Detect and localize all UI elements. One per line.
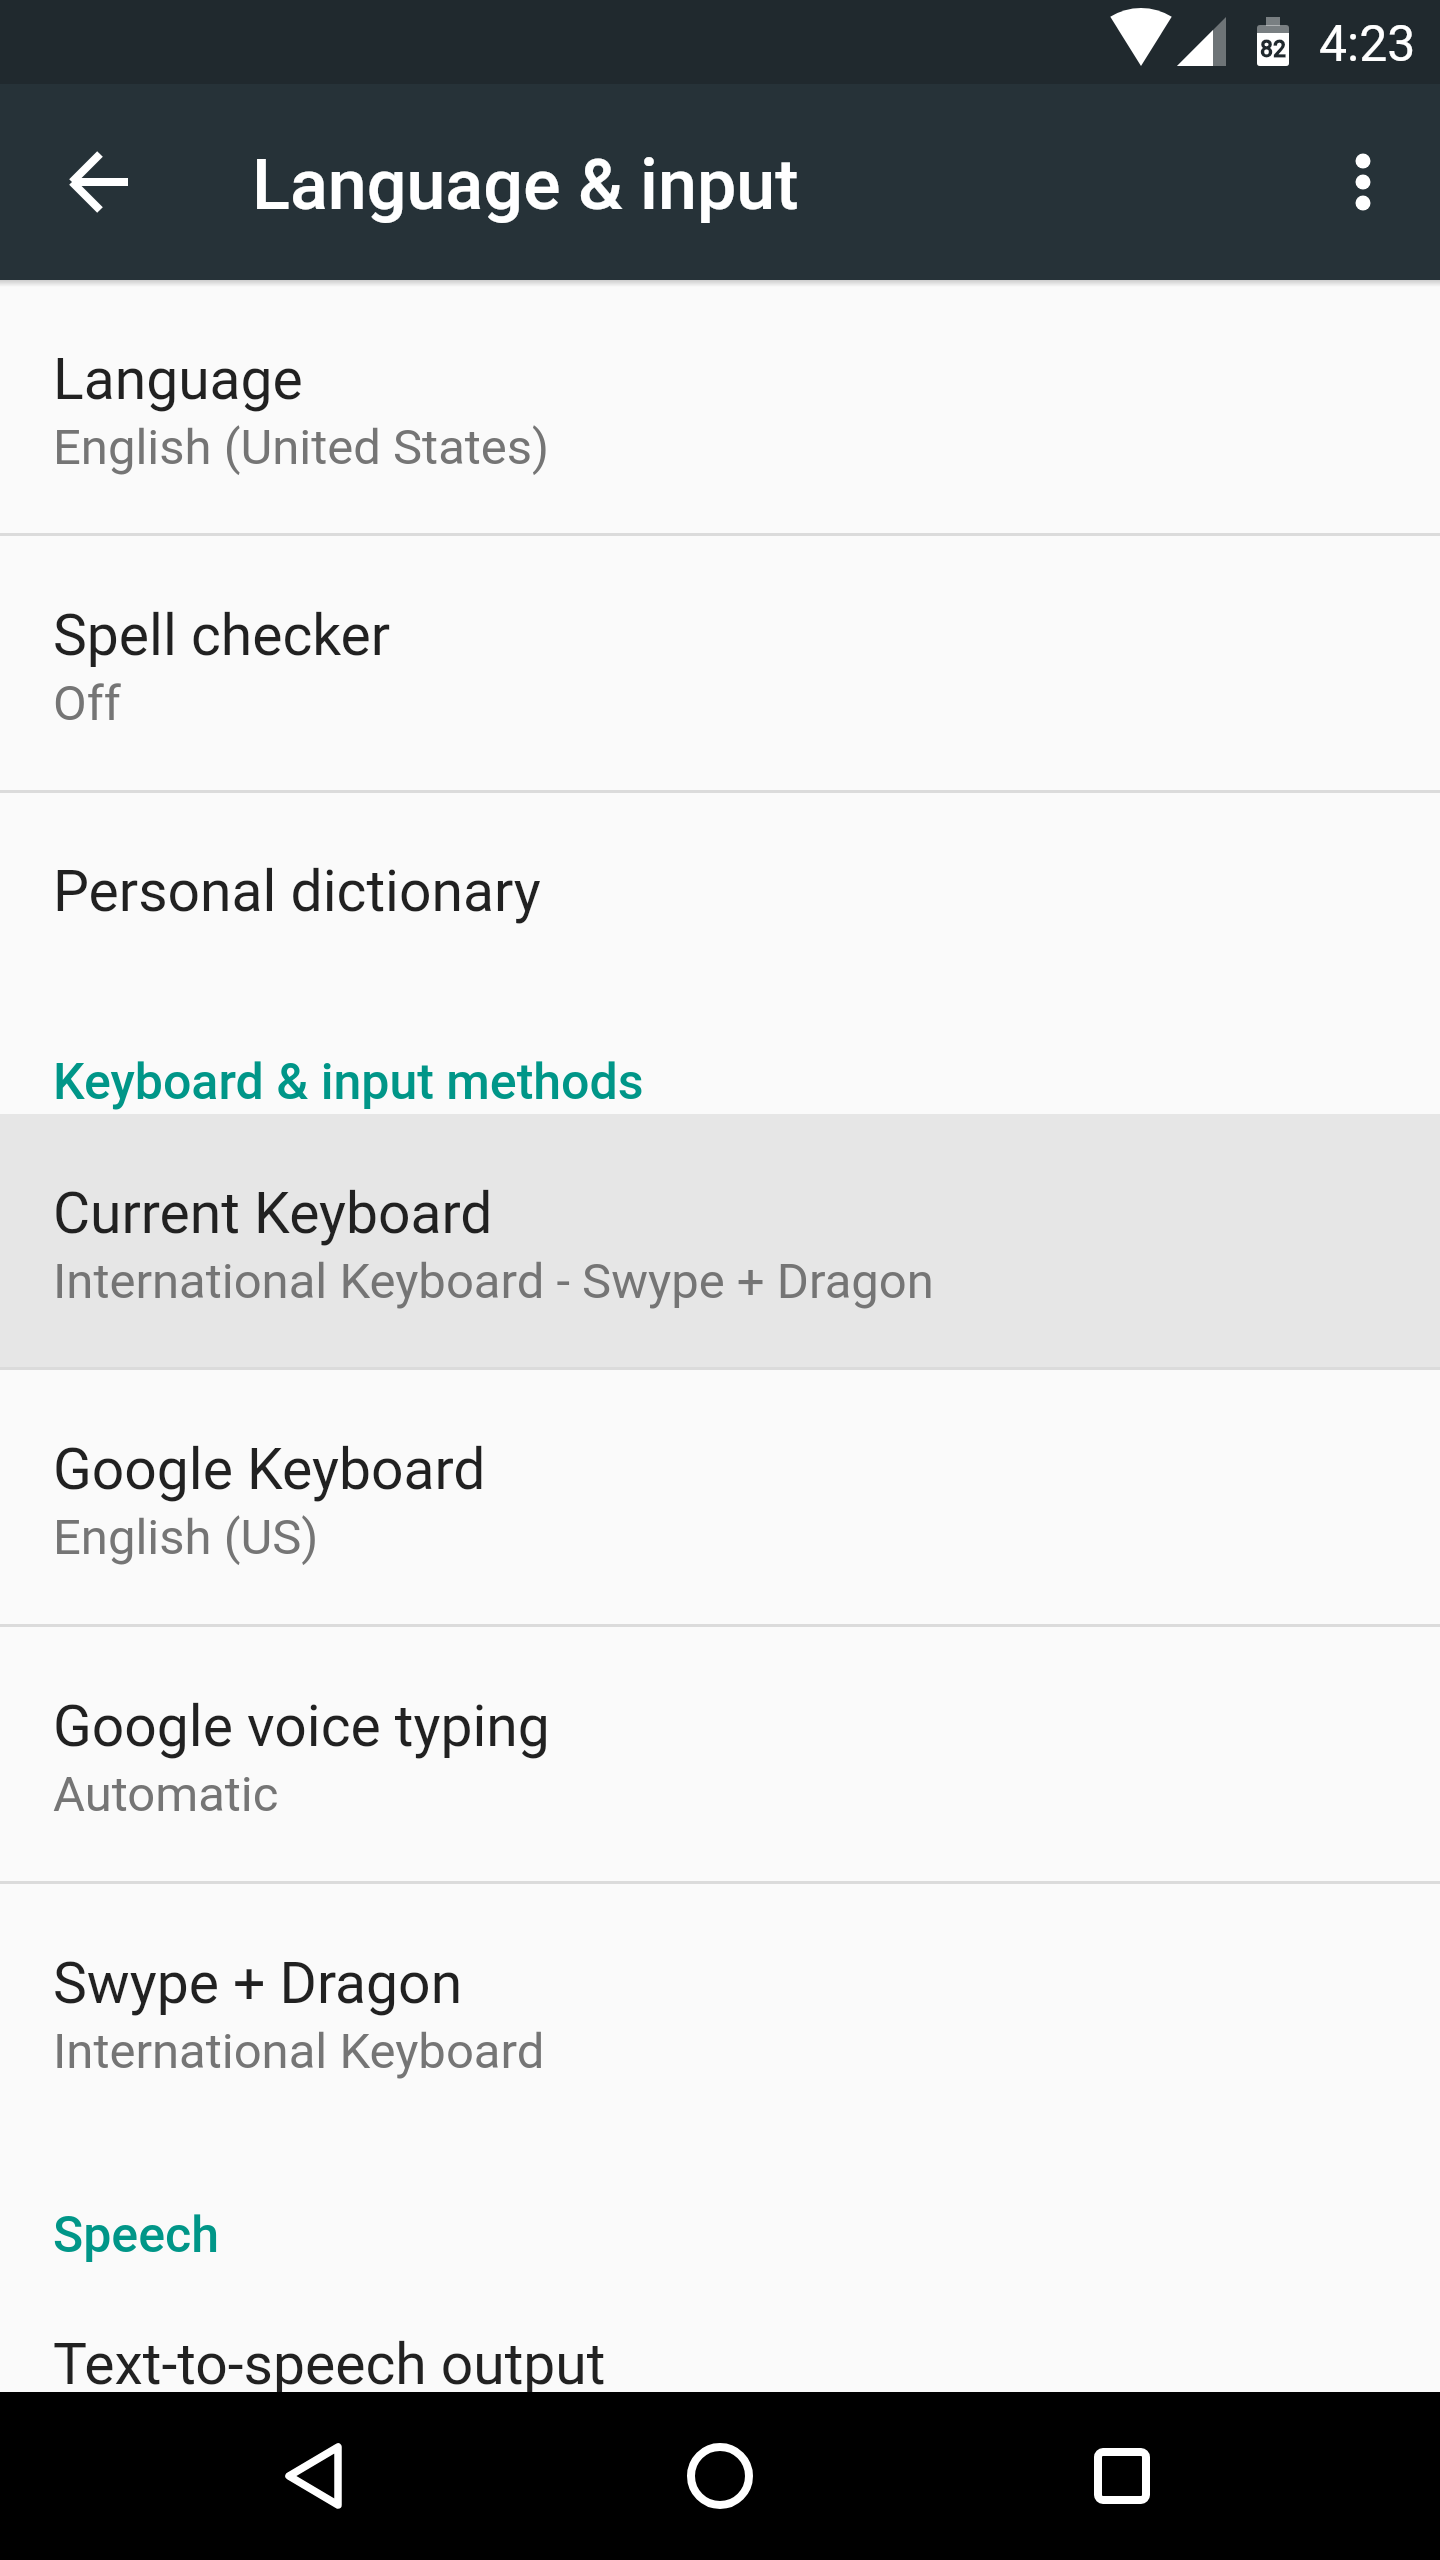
staticText: English (US) [53, 1509, 319, 1566]
button[interactable] [646, 2402, 794, 2550]
staticText: Keyboard & input methods [53, 1053, 644, 1112]
staticText: English (United States) [53, 419, 550, 476]
staticText: Spell checker [53, 602, 391, 669]
staticText: Automatic [53, 1766, 279, 1823]
staticText: Off [53, 675, 121, 732]
staticText: Language [53, 346, 303, 413]
button[interactable] [1307, 126, 1419, 238]
button[interactable]: Personal dictionary [0, 793, 1440, 989]
staticText: Swype + Dragon [53, 1950, 463, 2017]
staticText: Google Keyboard [53, 1436, 486, 1503]
button[interactable] [240, 2402, 388, 2550]
staticText: 82 [1260, 36, 1287, 63]
button[interactable]: Spell checker [0, 536, 1440, 790]
staticText: International Keyboard [53, 2023, 545, 2080]
button[interactable]: Text-to-speech output [0, 2267, 1440, 2392]
staticText: Google voice typing [53, 1693, 550, 1760]
button[interactable] [1048, 2402, 1196, 2550]
button[interactable]: Language [0, 280, 1440, 533]
staticText: Language & input [252, 144, 799, 226]
button[interactable]: Current Keyboard [0, 1114, 1440, 1367]
button[interactable]: Google voice typing [0, 1627, 1440, 1881]
button[interactable]: Google Keyboard [0, 1370, 1440, 1624]
staticText: Personal dictionary [53, 858, 541, 925]
staticText: International Keyboard - Swype + Dragon [53, 1253, 934, 1310]
button[interactable]: Swype + Dragon [0, 1884, 1440, 2137]
staticText: Current Keyboard [53, 1180, 493, 1247]
staticText: Text-to-speech output [53, 2331, 606, 2392]
staticText: 4:23 [1319, 15, 1416, 74]
staticText: Speech [53, 2206, 219, 2265]
button[interactable] [44, 126, 156, 238]
